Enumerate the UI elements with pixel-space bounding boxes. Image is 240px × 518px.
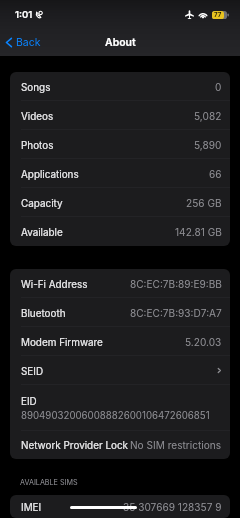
button[interactable]: SEID [10, 356, 230, 385]
staticText: Videos [21, 110, 54, 122]
button[interactable]: Network Provider Lock [10, 431, 230, 459]
staticText: EID [21, 395, 37, 407]
staticText: 35 307669 128357 9 [123, 501, 222, 513]
button[interactable]: Applications [10, 159, 230, 188]
button[interactable]: Bluetooth [10, 298, 230, 327]
staticText: 0 [215, 81, 222, 93]
staticText: 5.20.03 [185, 336, 222, 348]
staticText: Modem Firmware [21, 336, 103, 348]
button[interactable]: Back [0, 32, 45, 53]
button[interactable]: EID [10, 385, 230, 431]
staticText: Photos [21, 139, 54, 151]
staticText: 8C:EC:7B:93:D7:A7 [130, 307, 222, 319]
button[interactable]: Available [10, 217, 230, 246]
button[interactable]: Photos [10, 130, 230, 159]
button[interactable]: Songs [10, 72, 230, 101]
staticText: 5,082 [194, 110, 222, 122]
staticText: AVAILABLE SIMS [20, 478, 78, 487]
staticText: Wi-Fi Address [21, 278, 88, 290]
button[interactable]: Wi-Fi Address [10, 269, 230, 298]
staticText: 1:01 [15, 9, 33, 20]
staticText: 8C:EC:7B:89:E9:BB [130, 278, 222, 290]
staticText: Applications [21, 168, 79, 180]
staticText: Bluetooth [21, 307, 66, 319]
button[interactable]: Capacity [10, 188, 230, 217]
button[interactable]: Modem Firmware [10, 327, 230, 356]
staticText: About [105, 36, 136, 49]
staticText: 89049032006008882600106472606851 [21, 410, 210, 422]
staticText: 142.81 GB [175, 226, 222, 238]
staticText: IMEI [21, 501, 42, 513]
staticText: 77 [214, 11, 222, 19]
button[interactable]: IMEI [10, 495, 230, 518]
staticText: Capacity [21, 197, 63, 209]
staticText: Available [21, 226, 63, 238]
staticText: 66 [209, 168, 222, 180]
button[interactable]: Videos [10, 101, 230, 130]
staticText: SEID [21, 365, 44, 377]
staticText: Back [16, 36, 41, 49]
staticText: Network Provider Lock [21, 439, 129, 451]
staticText: No SIM restrictions [130, 439, 222, 451]
staticText: 5,890 [194, 139, 222, 151]
staticText: Songs [21, 81, 51, 93]
staticText: 256 GB [186, 197, 222, 209]
